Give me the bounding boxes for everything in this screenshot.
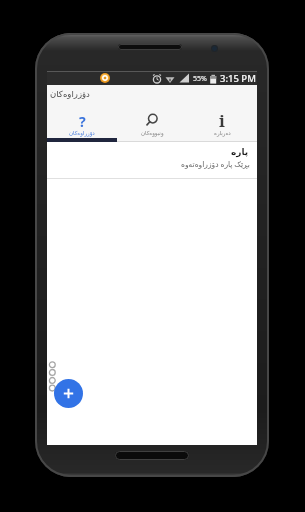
staticText: پارە <box>231 147 249 157</box>
button[interactable]: ونبووەکان <box>117 108 187 142</box>
button[interactable] <box>54 379 83 408</box>
staticText: دەربارە <box>214 130 231 136</box>
staticText: 3:15 PM <box>220 72 256 85</box>
staticText: بڕێک پارە دۆزراوەتەوە <box>181 159 250 169</box>
staticText: 55% <box>193 74 207 84</box>
button[interactable]: ? <box>47 108 117 142</box>
staticText: دۆزراوەکان <box>69 130 95 136</box>
staticText: ? <box>79 112 86 131</box>
staticText: i <box>219 109 225 132</box>
button[interactable]: پارە <box>47 142 257 179</box>
button[interactable]: i <box>187 108 257 142</box>
staticText: دۆزراوەکان <box>50 89 90 99</box>
staticText: ونبووەکان <box>141 130 164 136</box>
